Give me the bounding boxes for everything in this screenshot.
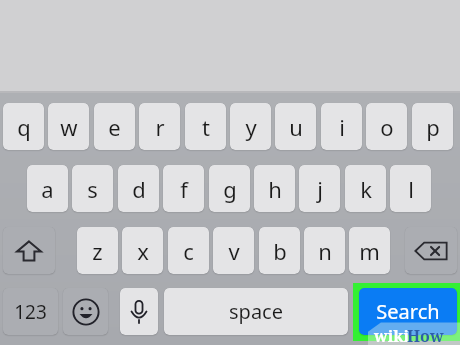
staticText: g: [223, 174, 237, 204]
staticText: space: [229, 298, 283, 325]
staticText: Search: [376, 298, 440, 325]
staticText: z: [92, 236, 103, 266]
staticText: q: [17, 112, 31, 142]
button[interactable]: r: [139, 103, 180, 150]
button[interactable]: Search: [359, 288, 457, 335]
button[interactable]: i: [321, 103, 362, 150]
staticText: l: [408, 174, 414, 204]
button[interactable]: p: [412, 103, 453, 150]
staticText: wiki: [374, 325, 410, 345]
button[interactable]: s: [72, 165, 113, 212]
button[interactable]: z: [77, 227, 118, 274]
button[interactable]: u: [275, 103, 316, 150]
button[interactable]: o: [366, 103, 407, 150]
staticText: u: [289, 112, 303, 142]
staticText: r: [155, 112, 165, 142]
button[interactable]: q: [3, 103, 44, 150]
staticText: b: [273, 236, 287, 266]
button[interactable]: f: [163, 165, 204, 212]
button[interactable]: x: [122, 227, 163, 274]
button[interactable]: c: [168, 227, 209, 274]
staticText: o: [380, 112, 394, 142]
staticText: c: [183, 236, 194, 266]
button[interactable]: space: [164, 288, 348, 335]
staticText: w: [60, 112, 78, 142]
staticText: t: [202, 112, 210, 142]
staticText: p: [426, 112, 440, 142]
staticText: j: [317, 174, 323, 204]
button[interactable]: w: [48, 103, 89, 150]
staticText: n: [318, 236, 332, 266]
button[interactable]: n: [304, 227, 345, 274]
staticText: a: [41, 174, 54, 204]
staticText: y: [245, 112, 257, 142]
button[interactable]: Voice input: [120, 288, 158, 335]
staticText: e: [108, 112, 121, 142]
staticText: x: [137, 236, 149, 266]
button[interactable]: v: [213, 227, 254, 274]
button[interactable]: Emoji: [63, 288, 108, 335]
button[interactable]: a: [27, 165, 68, 212]
staticText: h: [268, 174, 282, 204]
button[interactable]: j: [299, 165, 340, 212]
button[interactable]: b: [259, 227, 300, 274]
staticText: How: [407, 325, 444, 345]
button[interactable]: m: [349, 227, 390, 274]
staticText: i: [339, 112, 345, 142]
staticText: m: [359, 236, 380, 266]
button[interactable]: l: [390, 165, 431, 212]
staticText: d: [132, 174, 146, 204]
button[interactable]: g: [209, 165, 250, 212]
button[interactable]: h: [254, 165, 295, 212]
staticText: k: [360, 174, 372, 204]
button[interactable]: k: [345, 165, 386, 212]
button[interactable]: Shift: [3, 227, 55, 274]
staticText: s: [87, 174, 98, 204]
staticText: v: [228, 236, 240, 266]
button[interactable]: e: [94, 103, 135, 150]
button[interactable]: Backspace: [405, 227, 457, 274]
staticText: 123: [14, 299, 47, 325]
button[interactable]: 123: [3, 288, 58, 335]
button[interactable]: t: [185, 103, 226, 150]
button[interactable]: y: [230, 103, 271, 150]
button[interactable]: d: [118, 165, 159, 212]
staticText: f: [180, 174, 188, 204]
